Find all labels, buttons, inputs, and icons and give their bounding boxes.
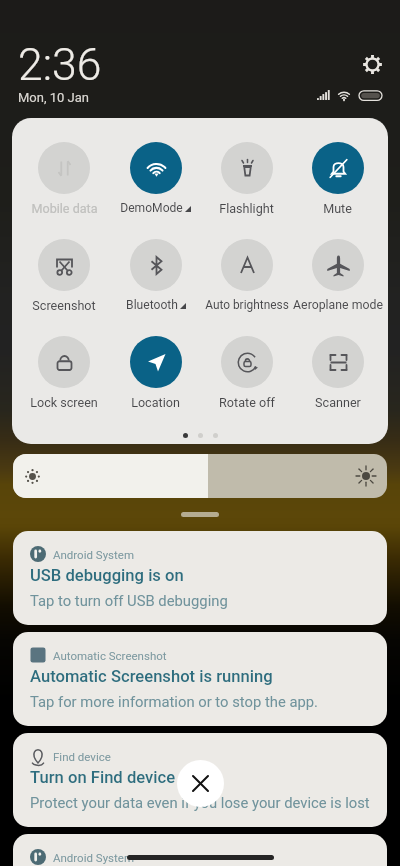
staticText: USB debugging is on [30,566,184,585]
button[interactable]: Screenshot [18,239,110,324]
button[interactable]: DemoMode [110,142,201,227]
button[interactable]: Scanner [292,336,383,421]
staticText: Location [131,395,180,410]
staticText: DemoMode [120,201,183,215]
staticText: Automatic Screenshot is running [30,667,273,686]
button[interactable]: Rotate off [201,336,292,421]
button[interactable]: Close [177,760,224,807]
button[interactable]: Find device [13,733,387,827]
staticText: Screenshot [32,298,96,313]
staticText: Scanner [315,395,361,410]
staticText: Automatic Screenshot [53,649,167,662]
button[interactable]: Lock screen [18,336,110,421]
staticText: Android System [53,548,134,561]
staticText: Bluetooth [126,298,178,312]
staticText: Tap for more information or to stop the … [30,693,318,710]
staticText: Aeroplane mode [293,298,383,312]
button[interactable]: Flashlight [201,142,292,227]
staticText: 2:36 [18,39,102,91]
button[interactable]: Automatic Screenshot [13,632,387,726]
button[interactable]: Mobile data [18,142,110,227]
staticText: Auto brightness [205,298,289,312]
staticText: Android System [53,851,134,864]
button[interactable]: Mute [292,142,383,227]
button[interactable]: Aeroplane mode [292,239,383,324]
button[interactable]: Auto brightness [201,239,292,324]
staticText: Mon, 10 Jan [18,90,89,105]
button[interactable]: Location [110,336,201,421]
staticText: Tap to turn off USB debugging [30,592,228,609]
button[interactable]: Settings [361,53,384,76]
button[interactable]: Android System [13,834,387,866]
staticText: Turn on Find device [30,768,176,787]
staticText: Rotate off [219,395,275,410]
staticText: Lock screen [30,395,98,410]
button[interactable]: Android System [13,531,387,625]
staticText: Protect your data even if you lose your … [30,794,370,811]
staticText: Flashlight [219,201,274,216]
staticText: Find device [53,750,111,763]
staticText: Mobile data [31,201,98,216]
button[interactable]: Bluetooth [110,239,201,324]
staticText: Mute [323,201,352,216]
button[interactable] [13,454,387,498]
